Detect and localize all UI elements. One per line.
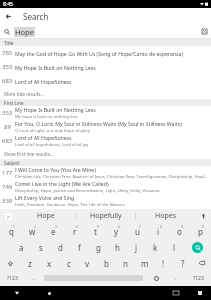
button[interactable]: 683 <box>0 134 211 148</box>
staticText: My Hope Is Built on Nothing Less <box>15 106 96 113</box>
staticText: First Line <box>4 100 24 106</box>
button[interactable]: 0 <box>190 223 211 239</box>
button[interactable]: More title results... <box>0 88 211 99</box>
button[interactable]: 683 <box>0 74 211 88</box>
staticText: h <box>115 242 120 253</box>
staticText: Faith, Freedom, Guidance, Hope, The Life… <box>15 202 125 208</box>
button[interactable]: a <box>11 239 31 255</box>
button[interactable]: Back <box>0 286 34 300</box>
staticText: My hope is built on nothing less <box>15 114 78 120</box>
staticText: 5 <box>97 225 99 229</box>
button[interactable]: ?123 <box>185 271 211 285</box>
button[interactable]: x <box>40 255 59 271</box>
button[interactable]: Backspace <box>192 255 211 271</box>
staticText: Search <box>23 11 49 22</box>
button[interactable]: Shift <box>0 255 20 271</box>
button[interactable]: Show first line results... <box>0 148 211 159</box>
button[interactable]: h <box>108 239 127 255</box>
staticText: ?123 <box>7 275 18 282</box>
button[interactable]: 339 <box>0 194 211 208</box>
button[interactable]: b <box>97 255 116 271</box>
button[interactable]: Home <box>34 286 64 300</box>
staticText: 1 <box>13 225 15 229</box>
staticText: d <box>58 242 63 253</box>
staticText: p <box>198 226 203 237</box>
staticText: My Hope Is Built on Nothing Less <box>15 64 96 71</box>
button[interactable]: 89 <box>0 120 211 134</box>
button[interactable]: ? <box>173 255 192 271</box>
button[interactable]: s <box>31 239 51 255</box>
button[interactable]: 1 <box>0 223 22 239</box>
staticText: Hopefully <box>90 211 122 221</box>
button[interactable]: f <box>70 239 89 255</box>
staticText: Lord of All Hopefulness <box>15 134 72 141</box>
staticText: Lift Every Voice and Sing <box>15 194 75 201</box>
staticText: 749 <box>2 183 13 191</box>
button[interactable]: ! <box>154 255 173 271</box>
staticText: v <box>85 258 90 269</box>
button[interactable]: c <box>59 255 78 271</box>
button[interactable]: ?123 <box>0 271 25 285</box>
button[interactable]: 8 <box>148 223 169 239</box>
staticText: 0 <box>202 225 204 229</box>
button[interactable]: 177 <box>0 166 211 180</box>
staticText: 3 <box>55 225 57 229</box>
button[interactable]: Clear <box>198 25 211 38</box>
button[interactable]: 353 <box>0 106 211 120</box>
staticText: o <box>177 226 182 237</box>
staticText: u <box>135 226 140 237</box>
button[interactable]: n <box>116 255 135 271</box>
staticText: 353 <box>2 109 13 117</box>
staticText: ? <box>181 258 185 269</box>
button[interactable]: 2 <box>22 223 43 239</box>
button[interactable]: 749 <box>0 180 211 194</box>
button[interactable]: 9 <box>169 223 190 239</box>
staticText: m <box>141 258 149 269</box>
button[interactable]: Clipboard <box>0 213 16 220</box>
staticText: 89 <box>4 123 11 131</box>
button[interactable]: Hopefully <box>76 209 135 223</box>
button[interactable]: Hopes <box>136 209 195 223</box>
staticText: 683 <box>2 137 13 145</box>
staticText: Hope <box>37 211 55 221</box>
button[interactable]: 353 <box>0 60 211 74</box>
button[interactable]: Search <box>192 242 203 253</box>
button[interactable]: Voice input <box>195 214 211 219</box>
button[interactable]: 5 <box>85 223 106 239</box>
button[interactable]: Recent apps <box>189 286 211 300</box>
button[interactable]: Hope <box>0 25 211 38</box>
staticText: z <box>28 258 32 269</box>
staticText: w <box>29 226 36 237</box>
button[interactable]: . <box>167 271 185 285</box>
button[interactable]: 7 <box>127 223 148 239</box>
button[interactable]: Keyboard <box>163 286 189 300</box>
button[interactable]: m <box>135 255 154 271</box>
button[interactable]: d <box>51 239 70 255</box>
button[interactable]: l <box>165 239 184 255</box>
button[interactable]: 765 <box>0 46 211 60</box>
staticText: May the God of Hope Go With Us (Song of … <box>15 50 184 57</box>
button[interactable]: v <box>78 255 97 271</box>
button[interactable]: 3 <box>43 223 64 239</box>
button[interactable]: 6 <box>106 223 127 239</box>
staticText: Title <box>4 40 14 46</box>
staticText: More title results... <box>4 91 45 97</box>
staticText: c <box>67 258 71 269</box>
button[interactable]: j <box>127 239 146 255</box>
button[interactable]: g <box>89 239 108 255</box>
button[interactable]: Emoji <box>145 271 167 285</box>
button[interactable]: Back <box>0 8 17 25</box>
button[interactable]: , <box>25 271 42 285</box>
staticText: 339 <box>2 197 13 205</box>
button[interactable]: Hope <box>16 209 75 223</box>
staticText: 4 <box>76 225 78 229</box>
button[interactable]: 4 <box>64 223 85 239</box>
staticText: 765 <box>2 49 13 57</box>
button[interactable]: k <box>146 239 165 255</box>
staticText: ! <box>162 258 165 269</box>
button[interactable]: z <box>20 255 40 271</box>
staticText: 177 <box>2 169 13 177</box>
staticText: q <box>9 226 14 237</box>
